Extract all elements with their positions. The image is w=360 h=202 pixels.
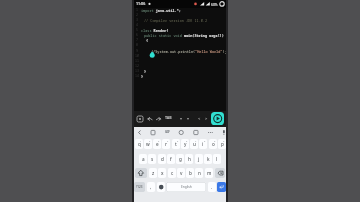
staticText: 0 xyxy=(223,140,225,143)
staticText: 3 xyxy=(158,140,160,143)
staticText: 11:06 xyxy=(136,1,146,6)
staticText: 6 xyxy=(186,140,188,143)
button[interactable]: . xyxy=(208,182,216,192)
button[interactable] xyxy=(178,116,184,122)
staticText: h xyxy=(188,156,191,162)
staticText: f xyxy=(170,156,172,162)
button[interactable]: TAB xyxy=(165,115,172,120)
button[interactable]: l xyxy=(213,154,221,164)
staticText: i xyxy=(202,141,204,147)
staticText: 8 xyxy=(136,43,138,47)
button[interactable]: v xyxy=(177,168,185,178)
staticText: o xyxy=(212,141,215,147)
staticText: 5 xyxy=(177,140,179,143)
button[interactable]: d xyxy=(158,154,166,164)
button[interactable] xyxy=(217,182,226,192)
button[interactable]: o xyxy=(209,139,217,149)
staticText: 1 xyxy=(140,140,142,143)
staticText: 2 xyxy=(136,13,138,17)
button[interactable] xyxy=(136,115,144,123)
button[interactable]: r xyxy=(162,139,170,149)
staticText: 13 xyxy=(135,69,139,73)
staticText: r xyxy=(165,141,167,147)
button[interactable]: ?123 xyxy=(134,182,145,192)
button[interactable] xyxy=(215,168,225,178)
staticText: } xyxy=(141,74,144,79)
staticText: e xyxy=(156,141,159,147)
staticText: 6 xyxy=(136,33,138,37)
staticText: 10 xyxy=(135,54,139,58)
staticText: , xyxy=(150,184,152,190)
staticText: y xyxy=(184,141,187,147)
staticText: c xyxy=(171,170,174,176)
button[interactable] xyxy=(157,182,165,192)
button[interactable]: e xyxy=(153,139,161,149)
staticText: TAB xyxy=(165,115,172,120)
button[interactable] xyxy=(211,112,224,125)
button[interactable]: m xyxy=(205,168,213,178)
staticText: u xyxy=(193,141,196,147)
staticText: j xyxy=(198,156,200,162)
staticText: d xyxy=(161,156,164,162)
staticText: 9 xyxy=(214,140,216,143)
button[interactable] xyxy=(155,115,162,122)
staticText: s xyxy=(151,156,154,162)
staticText: w xyxy=(146,141,150,147)
button[interactable]: j xyxy=(195,154,203,164)
staticText: } xyxy=(144,69,147,74)
staticText: 11 xyxy=(135,59,139,63)
staticText: //System.out.println("Hello World"); xyxy=(151,49,227,54)
staticText: x xyxy=(161,170,164,176)
button[interactable]: g xyxy=(176,154,184,164)
staticText: t xyxy=(175,141,177,147)
button[interactable]: x xyxy=(158,168,166,178)
button[interactable] xyxy=(166,182,206,192)
staticText: > xyxy=(205,116,208,121)
staticText: z xyxy=(152,170,155,176)
staticText: import java.util.*; xyxy=(141,8,181,13)
staticText: 14 xyxy=(135,74,139,78)
button[interactable]: y xyxy=(181,139,189,149)
staticText: public static void main(String args[]) xyxy=(144,33,224,38)
button[interactable]: a xyxy=(139,154,147,164)
staticText: p xyxy=(221,141,224,147)
button[interactable]: z xyxy=(149,168,157,178)
button[interactable]: b xyxy=(186,168,194,178)
button[interactable]: , xyxy=(147,182,155,192)
button[interactable]: w xyxy=(144,139,152,149)
staticText: 1 xyxy=(136,8,138,12)
button[interactable]: p xyxy=(218,139,226,149)
button[interactable]: c xyxy=(168,168,176,178)
staticText: 4 xyxy=(136,23,138,27)
button[interactable]: k xyxy=(204,154,212,164)
button[interactable]: i xyxy=(199,139,207,149)
button[interactable]: English xyxy=(166,182,206,192)
staticText: { xyxy=(146,38,149,43)
staticText: n xyxy=(198,170,201,176)
staticText: 7 xyxy=(195,140,197,143)
button[interactable]: s xyxy=(148,154,156,164)
staticText: a xyxy=(142,156,145,162)
staticText: class Render{ xyxy=(141,28,169,33)
staticText: 4 xyxy=(167,140,169,143)
staticText: 3 xyxy=(136,18,138,22)
button[interactable]: h xyxy=(185,154,193,164)
button[interactable]: f xyxy=(167,154,175,164)
button[interactable] xyxy=(185,116,191,122)
staticText: English xyxy=(181,185,192,189)
staticText: 7 xyxy=(136,38,138,42)
button[interactable]: t xyxy=(172,139,180,149)
staticText: 12 xyxy=(135,64,139,68)
staticText: // Compiler version JDK 11.0.2 xyxy=(144,18,207,23)
button[interactable] xyxy=(147,115,154,122)
staticText: m xyxy=(207,170,212,176)
button[interactable]: u xyxy=(190,139,198,149)
staticText: b xyxy=(189,170,192,176)
button[interactable]: n xyxy=(195,168,203,178)
button[interactable]: q xyxy=(135,139,143,149)
staticText: g xyxy=(179,156,182,162)
button[interactable] xyxy=(135,168,147,178)
staticText: . xyxy=(211,184,213,190)
staticText: v xyxy=(180,170,183,176)
staticText: k xyxy=(207,156,210,162)
